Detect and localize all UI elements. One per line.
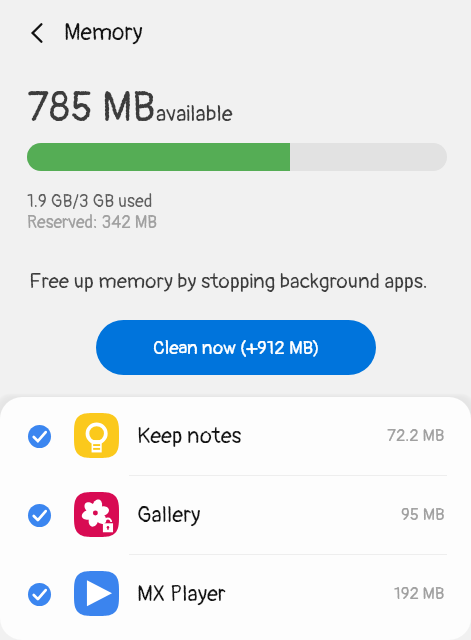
staticText: available	[156, 100, 233, 127]
button[interactable]: MX Player	[0, 555, 471, 633]
button[interactable]: Gallery	[0, 476, 471, 554]
staticText: 1.9 GB/3 GB used	[27, 190, 153, 212]
staticText: MX Player	[137, 580, 226, 607]
staticText: Clean now (+912 MB)	[153, 336, 320, 360]
staticText: Keep notes	[137, 422, 242, 449]
button[interactable]: Back	[26, 16, 48, 50]
staticText: Free up memory by stopping background ap…	[29, 269, 428, 295]
staticText: 192 MB	[394, 583, 445, 604]
staticText: 785 MB	[27, 82, 156, 134]
staticText: Reserved: 342 MB	[27, 212, 158, 234]
staticText: Memory	[64, 18, 143, 47]
staticText: 72.2 MB	[387, 425, 445, 446]
button[interactable]: Keep notes	[0, 397, 471, 475]
button[interactable]: Clean now (+912 MB)	[96, 320, 376, 375]
staticText: Gallery	[137, 501, 201, 528]
staticText: 95 MB	[401, 504, 445, 525]
